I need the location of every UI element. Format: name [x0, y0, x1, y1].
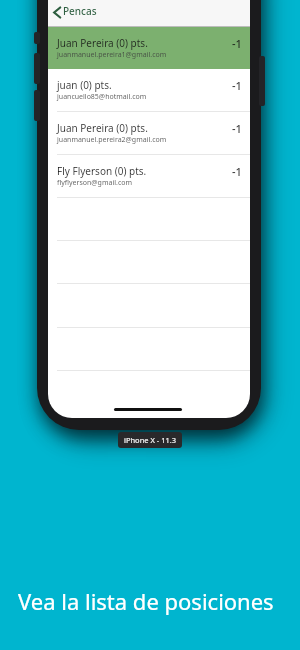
button[interactable]: juan (0) pts. [48, 69, 250, 112]
staticText: -1 [232, 164, 242, 179]
staticText: Juan Pereira (0) pts. [57, 121, 148, 135]
staticText: -1 [232, 36, 242, 51]
staticText: Juan Pereira (0) pts. [57, 36, 148, 50]
staticText: iPhone X - 11.3 [124, 435, 177, 445]
staticText: -1 [232, 121, 242, 136]
staticText: Vea la lista de posiciones [18, 586, 274, 616]
staticText: -1 [232, 78, 242, 93]
button[interactable]: Juan Pereira (0) pts. [48, 27, 250, 69]
staticText: juan (0) pts. [57, 78, 112, 92]
staticText: Pencas [63, 4, 97, 18]
staticText: flyflyerson@gmail.com [57, 178, 133, 188]
staticText: juancuello85@hotmail.com [57, 92, 147, 102]
staticText: juanmanuel.pereira1@gmail.com [57, 50, 167, 60]
staticText: juanmanuel.pereira2@gmail.com [57, 135, 167, 145]
button[interactable]: Pencas [48, 0, 250, 27]
button[interactable]: Juan Pereira (0) pts. [48, 112, 250, 155]
staticText: Fly Flyerson (0) pts. [57, 164, 147, 178]
button[interactable]: Fly Flyerson (0) pts. [48, 155, 250, 198]
